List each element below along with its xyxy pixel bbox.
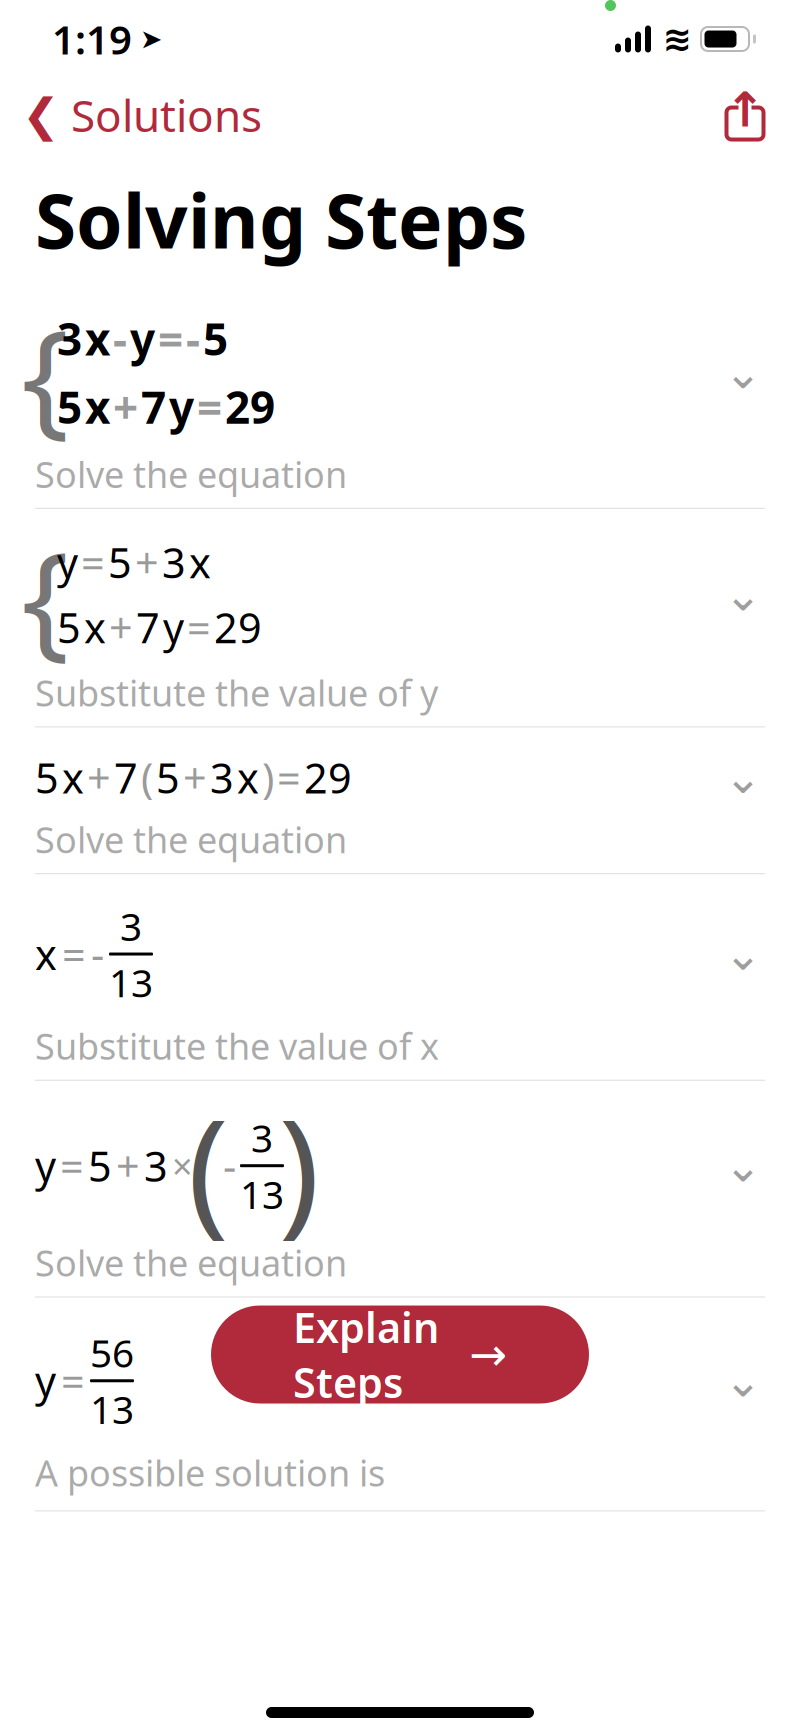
staticText: 5	[35, 750, 59, 805]
staticText: -	[91, 927, 104, 981]
staticText: ⌄	[724, 752, 762, 803]
staticText: 7	[114, 750, 138, 805]
staticText: 5	[203, 309, 228, 368]
button[interactable]: Explain Steps	[211, 1305, 589, 1403]
staticText: 13	[109, 957, 153, 1008]
staticText: y	[57, 535, 78, 590]
staticText: y	[130, 309, 155, 368]
staticText: y	[35, 1138, 56, 1193]
staticText: ⌄	[724, 1140, 762, 1191]
staticText: Solving Steps	[35, 170, 527, 269]
staticText: 3	[251, 1112, 273, 1163]
staticText: {	[21, 511, 69, 679]
staticText: {	[21, 288, 69, 457]
staticText: y	[169, 378, 194, 436]
staticText: Explain Steps	[293, 1300, 439, 1409]
staticText: (	[187, 1074, 228, 1257]
staticText: +	[183, 750, 207, 805]
staticText: x	[85, 378, 110, 436]
staticText: ≋	[662, 19, 691, 59]
button[interactable]: y	[0, 1081, 800, 1297]
staticText: -	[186, 309, 200, 368]
staticText: +	[135, 535, 159, 590]
staticText: x	[237, 750, 259, 805]
staticText: =	[187, 600, 211, 655]
staticText: Solutions	[71, 86, 262, 144]
staticText: 13	[240, 1168, 284, 1219]
staticText: (	[141, 750, 153, 805]
staticText: =	[62, 927, 86, 981]
staticText: 29	[304, 750, 352, 805]
staticText: ⌄	[724, 928, 762, 980]
staticText: 5	[57, 378, 82, 436]
staticText: 13	[90, 1383, 134, 1434]
button[interactable]: y	[0, 1301, 800, 1511]
staticText: =	[81, 535, 105, 590]
staticText: 3	[162, 535, 186, 590]
staticText: y	[163, 600, 184, 655]
button[interactable]: ❮	[0, 78, 262, 152]
staticText: +	[113, 378, 138, 436]
staticText: ⌄	[724, 569, 762, 620]
button[interactable]: {	[0, 509, 800, 727]
staticText: 56	[90, 1327, 134, 1378]
staticText: Substitute the value of y	[35, 669, 438, 716]
staticText: 3	[210, 750, 234, 805]
staticText: )	[278, 1074, 319, 1257]
staticText: x	[35, 927, 57, 981]
staticText: Substitute the value of x	[35, 1022, 439, 1070]
staticText: 7	[141, 378, 166, 436]
staticText: x	[84, 600, 106, 655]
staticText: -	[113, 309, 127, 368]
staticText: -	[223, 1138, 236, 1193]
staticText: Solve the equation	[35, 1239, 347, 1286]
button[interactable]: x	[0, 874, 800, 1081]
staticText: +	[116, 1138, 140, 1193]
staticText: =	[60, 1138, 84, 1193]
staticText: +	[87, 750, 111, 805]
button[interactable]: Share	[724, 83, 800, 147]
staticText: A possible solution is	[35, 1449, 385, 1496]
staticText: ×	[172, 1142, 193, 1190]
button[interactable]: {	[0, 291, 800, 509]
staticText: =	[197, 378, 222, 436]
staticText: ↑	[725, 83, 765, 137]
staticText: 7	[136, 600, 160, 655]
staticText: 5	[108, 535, 132, 590]
staticText: =	[277, 750, 301, 805]
staticText: y	[35, 1353, 56, 1408]
staticText: 5	[57, 600, 81, 655]
staticText: 5	[88, 1138, 112, 1193]
staticText: +	[109, 600, 133, 655]
staticText: Solve the equation	[35, 815, 347, 863]
staticText: 3	[120, 900, 142, 951]
staticText: =	[158, 309, 183, 368]
staticText: ⌄	[724, 1355, 762, 1406]
staticText: ⌄	[724, 347, 762, 398]
staticText: ❮	[22, 89, 60, 141]
staticText: 29	[214, 600, 262, 655]
staticText: x	[62, 750, 84, 805]
staticText: )	[262, 750, 274, 805]
staticText: x	[85, 309, 110, 368]
staticText: x	[189, 535, 211, 590]
button[interactable]: 5	[0, 727, 800, 874]
staticText: →	[469, 1329, 507, 1380]
staticText: 5	[156, 750, 180, 805]
staticText: 29	[225, 378, 275, 436]
staticText: 3	[144, 1138, 168, 1193]
staticText: ➤	[140, 24, 162, 54]
staticText: 3	[57, 309, 82, 368]
staticText: =	[61, 1353, 85, 1408]
staticText: Solve the equation	[35, 450, 347, 498]
staticText: 1:19	[52, 12, 132, 65]
